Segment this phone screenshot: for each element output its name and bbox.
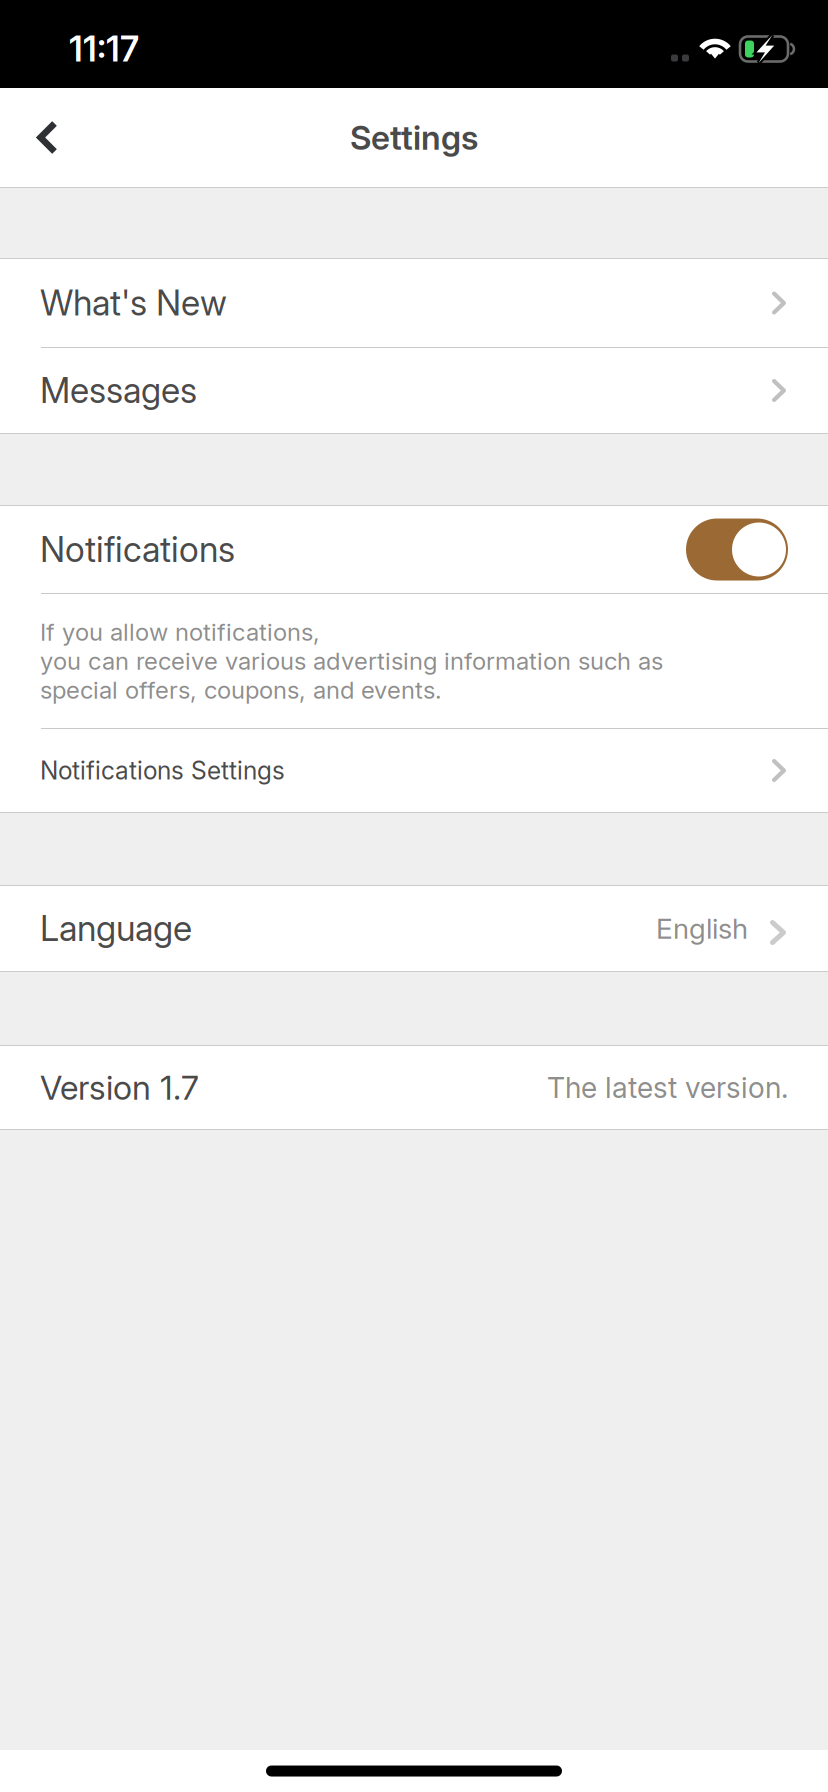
staticText: Messages — [40, 369, 197, 411]
button[interactable]: Back — [0, 92, 87, 182]
button[interactable]: Language — [0, 886, 828, 971]
staticText: Notifications Settings — [40, 756, 285, 785]
staticText: Language — [40, 907, 192, 949]
button[interactable]: Messages — [0, 348, 828, 433]
staticText: The latest version. — [547, 1070, 788, 1105]
staticText: 11:17 — [69, 28, 139, 70]
staticText: Notifications — [40, 528, 235, 570]
staticText: you can receive various advertising info… — [40, 646, 663, 675]
staticText: Version 1.7 — [40, 1067, 199, 1108]
button[interactable]: Notifications Settings — [0, 729, 828, 812]
staticText: Settings — [350, 117, 478, 158]
staticText: What's New — [40, 282, 227, 324]
staticText: special offers, coupons, and events. — [40, 675, 442, 704]
staticText: If you allow notifications, — [40, 617, 320, 646]
staticText: English — [656, 912, 748, 945]
button[interactable]: What's New — [0, 259, 828, 347]
button[interactable]: Notifications — [686, 518, 788, 580]
